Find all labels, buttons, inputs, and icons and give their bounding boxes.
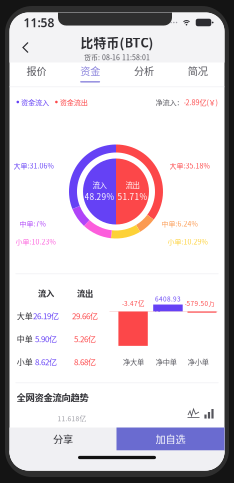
staticText: 6408.93万 xyxy=(155,294,181,312)
button[interactable]: Back xyxy=(13,34,37,60)
staticText: 流入 xyxy=(38,287,54,299)
staticText: 大单 xyxy=(17,310,33,322)
staticText: 大单:35.18% xyxy=(169,160,209,170)
staticText: -2.89亿(￥) xyxy=(183,97,217,107)
staticText: 资金 xyxy=(80,63,100,78)
button[interactable]: Line chart xyxy=(187,408,199,418)
staticText: -3.47亿 xyxy=(122,298,144,308)
staticText: 货币: 08-16 11:58:01 xyxy=(84,52,150,62)
staticText: 比特币(BTC) xyxy=(80,33,153,51)
staticText: 8.68亿 xyxy=(74,356,96,368)
staticText: 大单:31.06% xyxy=(13,160,53,170)
staticText: 加自选 xyxy=(155,432,185,446)
staticText: 全网资金流向趋势 xyxy=(16,390,88,404)
staticText: 小单:10.29% xyxy=(167,236,207,246)
button[interactable]: 分析 xyxy=(117,62,171,86)
staticText: 中单:7% xyxy=(19,218,45,228)
staticText: 51.71% xyxy=(117,190,147,202)
staticText: -579.50万 xyxy=(184,298,214,308)
staticText: 48.29% xyxy=(84,190,114,202)
button[interactable]: 简况 xyxy=(171,62,225,86)
staticText: 净大单 xyxy=(123,356,144,367)
button[interactable]: 分享 xyxy=(9,427,116,450)
staticText: 小单 xyxy=(17,356,33,368)
staticText: 流出 xyxy=(77,287,93,299)
staticText: 资金流入 xyxy=(21,97,49,107)
staticText: 中单 xyxy=(17,333,33,345)
button[interactable]: 加自选 xyxy=(116,427,224,450)
staticText: 11:58 xyxy=(23,14,54,30)
staticText: 5.26亿 xyxy=(74,333,96,345)
staticText: 简况 xyxy=(188,63,208,78)
staticText: 分析 xyxy=(134,63,154,78)
staticText: 小单:10.23% xyxy=(15,236,55,246)
staticText: 净中单 xyxy=(156,356,177,367)
staticText: 净流入： xyxy=(155,97,183,107)
button[interactable]: Bar chart xyxy=(203,408,214,418)
staticText: 分享 xyxy=(53,432,73,446)
staticText: 流出 xyxy=(125,179,139,190)
staticText: 29.66亿 xyxy=(72,310,98,322)
staticText: 资金流出 xyxy=(60,97,88,107)
staticText: 11.618亿 xyxy=(57,413,86,423)
staticText: 净小单 xyxy=(188,356,209,367)
staticText: 5.90亿 xyxy=(35,333,57,345)
staticText: 26.19亿 xyxy=(33,310,59,322)
staticText: 8.62亿 xyxy=(35,356,57,368)
staticText: 流入 xyxy=(92,179,106,190)
button[interactable]: 报价 xyxy=(9,62,63,86)
button[interactable]: 资金 xyxy=(63,62,117,86)
staticText: 中单:6.24% xyxy=(161,218,197,228)
staticText: 报价 xyxy=(26,63,46,78)
